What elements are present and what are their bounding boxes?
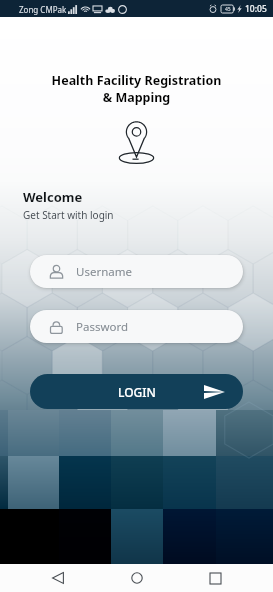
staticText: 10:05 [245,3,267,15]
staticText: Username [76,264,132,280]
staticText: LOGIN [118,384,156,400]
staticText: Zong CMPak [19,4,67,15]
button[interactable]: Password [30,310,243,343]
staticText: Password [76,319,129,335]
staticText: Get Start with login [23,208,114,222]
button[interactable]: Username [30,255,243,288]
staticText: Welcome [23,188,83,206]
button[interactable]: Home [117,564,157,592]
button[interactable]: Recent apps [195,564,235,592]
button[interactable]: Back [38,564,78,592]
staticText: 45 [225,6,231,13]
button[interactable]: LOGIN [30,374,243,409]
staticText: Health Facility Registration & Mapping [0,72,273,106]
